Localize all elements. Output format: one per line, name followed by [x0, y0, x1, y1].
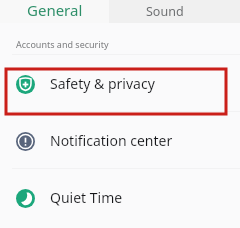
button[interactable]: Safety & privacy: [0, 54, 240, 111]
button[interactable]: Notification center: [0, 111, 240, 168]
staticText: Safety & privacy: [50, 74, 155, 93]
button[interactable]: Sound: [109, 0, 240, 23]
button[interactable]: General: [0, 0, 109, 23]
staticText: Notification center: [50, 131, 173, 150]
staticText: General: [27, 0, 83, 20]
staticText: Quiet Time: [50, 188, 123, 207]
staticText: Accounts and security: [16, 38, 109, 50]
button[interactable]: Quiet Time: [0, 168, 240, 225]
staticText: Sound: [146, 3, 184, 20]
